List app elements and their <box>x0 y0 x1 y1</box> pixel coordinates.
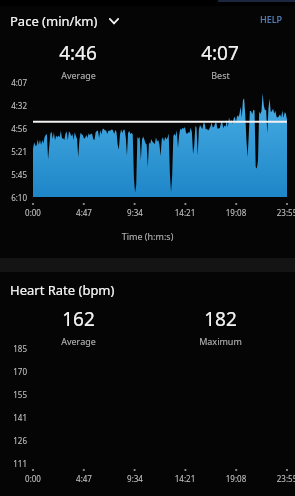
staticText: 0:00 <box>11 473 55 484</box>
staticText: 182 <box>204 306 237 332</box>
staticText: 23:55 <box>265 207 295 218</box>
staticText: 162 <box>62 306 95 332</box>
staticText: Average <box>61 335 96 347</box>
staticText: 5:21 <box>0 146 27 157</box>
staticText: 4:07 <box>201 40 239 66</box>
staticText: 9:34 <box>113 207 157 218</box>
staticText: 170 <box>0 366 27 377</box>
staticText: 6:10 <box>0 192 27 203</box>
button[interactable]: Heart Rate (bpm) <box>10 279 115 301</box>
staticText: Best <box>211 69 230 81</box>
staticText: 23:55 <box>265 473 295 484</box>
button[interactable]: 4:46 <box>23 40 133 81</box>
button[interactable]: 162 <box>23 306 133 347</box>
staticText: 155 <box>0 389 27 400</box>
staticText: 9:34 <box>113 473 157 484</box>
button[interactable]: 4:07 <box>165 40 275 81</box>
staticText: 141 <box>0 412 27 423</box>
staticText: 4:56 <box>0 123 27 134</box>
button[interactable]: HELP <box>252 10 290 28</box>
staticText: 14:21 <box>163 473 207 484</box>
other: Change metric <box>106 13 122 29</box>
staticText: Time (h:m:s) <box>0 230 295 242</box>
staticText: 5:45 <box>0 169 27 180</box>
staticText: 111 <box>0 458 27 469</box>
staticText: Heart Rate (bpm) <box>10 281 115 299</box>
button[interactable]: 182 <box>165 306 275 347</box>
staticText: 4:07 <box>0 77 27 88</box>
staticText: Pace (min/km) <box>10 12 98 30</box>
staticText: 14:21 <box>163 207 207 218</box>
staticText: 4:47 <box>62 207 106 218</box>
staticText: 4:47 <box>62 473 106 484</box>
staticText: 4:32 <box>0 100 27 111</box>
staticText: 126 <box>0 435 27 446</box>
staticText: HELP <box>260 13 283 25</box>
button[interactable]: Pace (min/km) <box>10 10 122 32</box>
staticText: Maximum <box>199 335 242 347</box>
staticText: 185 <box>0 343 27 354</box>
staticText: 0:00 <box>11 207 55 218</box>
staticText: 4:46 <box>59 40 97 66</box>
staticText: Average <box>61 69 96 81</box>
staticText: 19:08 <box>214 473 258 484</box>
staticText: 19:08 <box>214 207 258 218</box>
